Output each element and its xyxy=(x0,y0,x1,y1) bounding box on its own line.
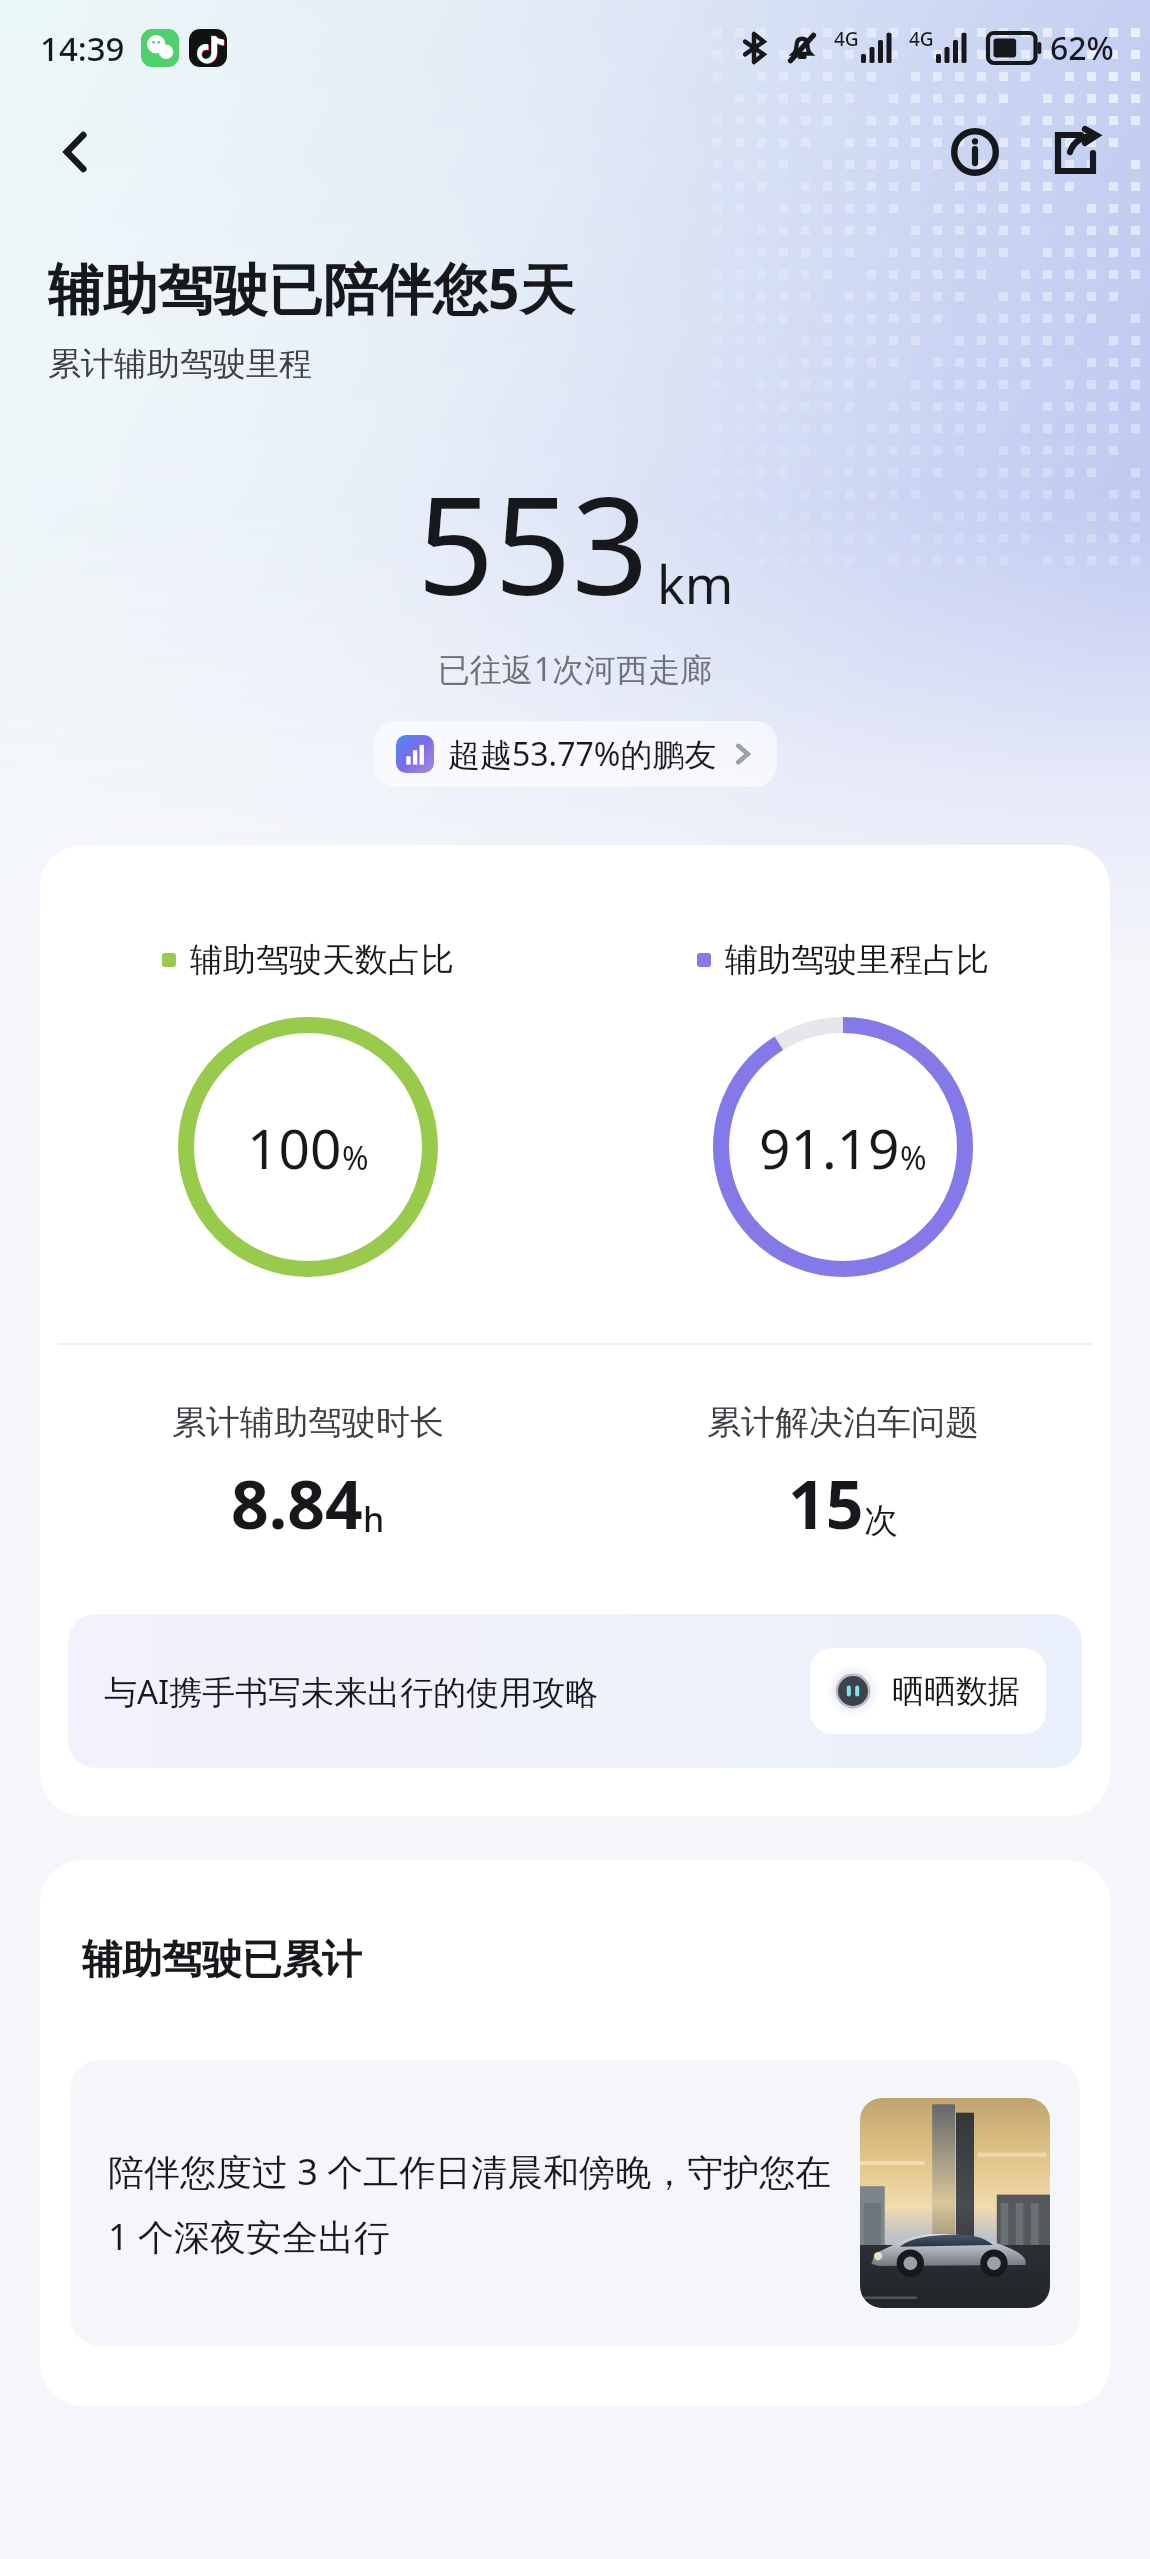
staticText: 8.84 xyxy=(231,1458,363,1548)
staticText: 4G xyxy=(909,26,934,52)
button[interactable]: 陪伴您度过 3 个工作日清晨和傍晚，守护您在 1 个深夜安全出行 xyxy=(70,2060,1080,2346)
staticText: 与AI携手书写未来出行的使用攻略 xyxy=(104,1669,786,1714)
staticText: 辅助驾驶已陪伴您5天 xyxy=(48,250,575,325)
staticText: 62% xyxy=(1050,26,1114,70)
staticText: 91.19 xyxy=(759,1110,900,1185)
staticText: 15 xyxy=(788,1458,864,1548)
staticText: % xyxy=(900,1136,927,1180)
staticText: 次 xyxy=(864,1499,898,1542)
staticText: 超越53.77%的鹏友 xyxy=(448,732,717,776)
button[interactable]: Share xyxy=(1036,113,1114,191)
staticText: 4G xyxy=(834,26,859,52)
staticText: km xyxy=(657,548,734,619)
staticText: 陪伴您度过 3 个工作日清晨和傍晚，守护您在 1 个深夜安全出行 xyxy=(108,2147,832,2260)
staticText: 累计解决泊车问题 xyxy=(707,1401,979,1444)
staticText: 辅助驾驶天数占比 xyxy=(190,939,454,981)
button[interactable]: Information xyxy=(936,113,1014,191)
staticText: % xyxy=(342,1136,369,1180)
staticText: 辅助驾驶已累计 xyxy=(82,1934,362,1984)
button[interactable]: Back xyxy=(40,116,112,188)
button[interactable]: 超越53.77%的鹏友 xyxy=(374,721,777,787)
staticText: 晒晒数据 xyxy=(892,1671,1020,1711)
staticText: 100 xyxy=(247,1110,342,1185)
staticText: 辅助驾驶里程占比 xyxy=(725,939,989,981)
staticText: h xyxy=(363,1496,385,1542)
staticText: 553 xyxy=(417,451,649,635)
button[interactable]: 晒晒数据 xyxy=(810,1648,1046,1734)
button[interactable]: 与AI携手书写未来出行的使用攻略 xyxy=(68,1614,1082,1768)
staticText: 累计辅助驾驶时长 xyxy=(172,1401,444,1444)
staticText: 14:39 xyxy=(40,26,125,71)
staticText: 已往返1次河西走廊 xyxy=(0,647,1150,691)
staticText: 累计辅助驾驶里程 xyxy=(48,343,312,385)
